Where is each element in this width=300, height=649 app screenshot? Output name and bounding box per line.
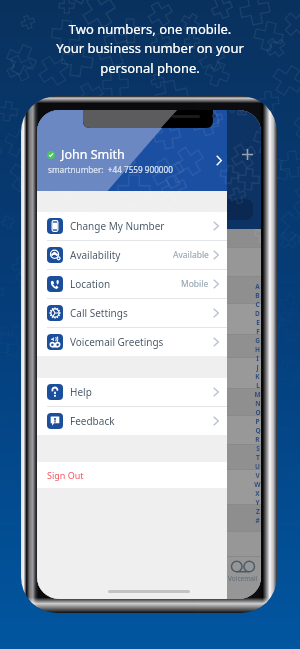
button[interactable]: Sign Out: [37, 462, 227, 488]
staticText: V: [255, 471, 260, 480]
staticText: H: [255, 345, 260, 354]
button[interactable]: Availability: [37, 241, 227, 269]
staticText: E: [256, 318, 260, 327]
button[interactable]: Feedback: [37, 407, 227, 435]
staticText: smartnumber: +44 7559 900000: [48, 164, 173, 175]
button[interactable]: Location: [37, 270, 227, 298]
staticText: W: [254, 480, 261, 489]
staticText: G: [255, 336, 260, 345]
staticText: T: [256, 453, 260, 462]
staticText: Voicemail: [228, 574, 258, 583]
staticText: S: [256, 444, 260, 453]
staticText: Location: [70, 277, 111, 291]
staticText: K: [255, 372, 260, 381]
staticText: O: [255, 408, 261, 417]
staticText: C: [255, 300, 260, 309]
staticText: U: [255, 462, 260, 471]
button[interactable]: Voicemail: [223, 561, 261, 583]
staticText: I: [256, 354, 259, 363]
staticText: Call Settings: [70, 306, 128, 320]
button[interactable]: Profile: [212, 153, 226, 167]
staticText: P: [255, 417, 260, 426]
staticText: Change My Number: [70, 219, 165, 233]
staticText: Available: [173, 249, 209, 261]
staticText: M: [254, 390, 261, 399]
staticText: Z: [256, 507, 260, 516]
staticText: X: [255, 489, 260, 498]
staticText: John Smith: [61, 146, 125, 163]
staticText: Mobile: [181, 278, 209, 290]
staticText: Two numbers, one mobile. Your business n…: [0, 20, 300, 77]
staticText: Availability: [70, 248, 121, 262]
staticText: L: [256, 381, 260, 390]
staticText: B: [255, 291, 260, 300]
staticText: Sign Out: [47, 469, 84, 481]
button[interactable]: Help: [37, 378, 227, 406]
staticText: Y: [255, 498, 260, 507]
staticText: Help: [70, 385, 92, 399]
staticText: J: [256, 363, 259, 372]
staticText: D: [255, 309, 260, 318]
staticText: Feedback: [70, 414, 115, 428]
staticText: #: [255, 516, 260, 525]
button[interactable]: Add contact: [242, 149, 253, 160]
staticText: Q: [255, 426, 261, 435]
staticText: Voicemail Greetings: [70, 335, 164, 349]
button[interactable]: Voicemail Greetings: [37, 328, 227, 356]
staticText: R: [255, 435, 260, 444]
staticText: N: [255, 399, 261, 408]
button[interactable]: Change My Number: [37, 212, 227, 240]
button[interactable]: Call Settings: [37, 299, 227, 327]
staticText: A: [255, 282, 260, 291]
staticText: F: [256, 327, 260, 336]
